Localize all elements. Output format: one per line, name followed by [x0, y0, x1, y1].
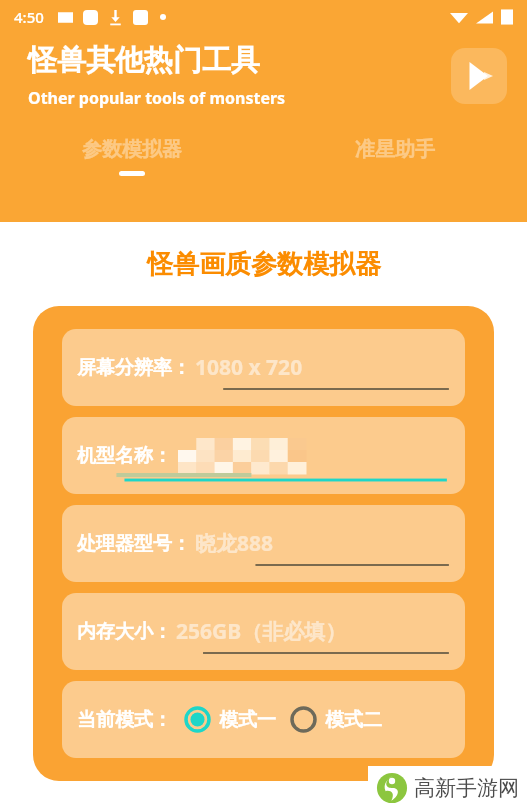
- button[interactable]: 机型名称：: [62, 417, 465, 494]
- staticText: 模式二: [325, 708, 382, 732]
- staticText: 怪兽其他热门工具: [28, 42, 260, 79]
- staticText: 屏幕分辨率：: [77, 356, 191, 380]
- staticText: 1080 x 720: [195, 353, 303, 382]
- button[interactable]: 模式一: [184, 702, 276, 737]
- staticText: 晓龙888: [195, 529, 274, 558]
- staticText: 内存大小：: [77, 620, 172, 644]
- button[interactable]: 准星助手: [263, 131, 527, 171]
- staticText: 机型名称：: [77, 444, 172, 468]
- staticText: 怪兽画质参数模拟器: [147, 248, 381, 281]
- button[interactable]: 参数模拟器: [0, 131, 263, 176]
- button[interactable]: 模式二: [290, 702, 382, 737]
- button[interactable]: 屏幕分辨率：: [62, 329, 465, 406]
- staticText: 参数模拟器: [82, 137, 182, 162]
- staticText: 当前模式：: [77, 708, 172, 732]
- button[interactable]: 处理器型号：: [62, 505, 465, 582]
- staticText: 处理器型号：: [77, 532, 191, 556]
- staticText: 高新手游网: [414, 775, 519, 801]
- staticText: 模式一: [219, 708, 276, 732]
- button[interactable]: Google Play: [451, 48, 507, 104]
- button[interactable]: 内存大小：: [62, 593, 465, 670]
- staticText: 256GB（非必填）: [176, 617, 347, 646]
- staticText: 准星助手: [355, 137, 435, 162]
- staticText: 4:50: [14, 7, 44, 27]
- staticText: Other popular tools of monsters: [28, 87, 286, 109]
